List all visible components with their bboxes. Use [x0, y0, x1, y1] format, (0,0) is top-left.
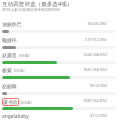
- button[interactable]: 虞书欣: [0, 98, 120, 113]
- staticText: 47 (2.0%): [90, 113, 107, 118]
- button[interactable]: 赵露思: [0, 52, 120, 67]
- staticText: (已选): [19, 53, 30, 58]
- staticText: angelababy: [2, 113, 29, 120]
- button[interactable]: 赵丽颖: [0, 83, 120, 98]
- staticText: 319 (12.0%): [85, 37, 107, 42]
- button[interactable]: 杨紫: [0, 67, 120, 82]
- staticText: (已选): [21, 100, 32, 105]
- staticText: 迪丽热巴: [2, 21, 22, 27]
- staticText: (已选): [14, 68, 25, 73]
- staticText: 2679人参与·距离结束还有22时50分: [2, 7, 61, 12]
- staticText: 虞书欣: [3, 99, 18, 105]
- staticText: 赵丽颖: [2, 83, 17, 89]
- staticText: 赵露思: [2, 52, 17, 58]
- button[interactable]: 鞠婧祎: [0, 37, 120, 52]
- staticText: 鞠婧祎: [2, 37, 17, 43]
- staticText: 1541 (60.0%): [83, 67, 107, 72]
- staticText: 1587 (62.0%): [83, 98, 107, 103]
- staticText: 互动四普评选（最多选4项）: [2, 0, 73, 8]
- staticText: 1242 (48.0%): [83, 52, 107, 57]
- staticText: 杨紫: [2, 67, 12, 73]
- staticText: 95 (4.0%): [90, 83, 107, 88]
- staticText: 164 (6.0%): [87, 21, 107, 26]
- button[interactable]: 迪丽热巴: [0, 21, 120, 36]
- button[interactable]: angelababy: [0, 113, 120, 120]
